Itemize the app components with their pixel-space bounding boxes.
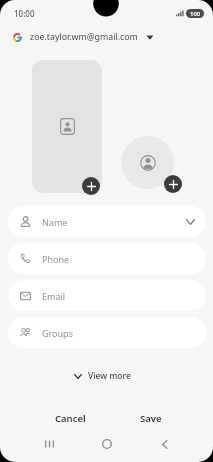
button[interactable]: View more <box>0 366 209 386</box>
button[interactable]: Groups <box>8 317 206 348</box>
button[interactable] <box>32 60 102 193</box>
staticText: 10:00 <box>14 8 35 19</box>
button[interactable] <box>36 434 62 454</box>
button[interactable]: Name <box>8 206 206 237</box>
button[interactable]: Save <box>119 404 183 432</box>
button[interactable]: Phone <box>8 243 206 274</box>
button[interactable]: Cancel <box>38 404 102 432</box>
staticText: Save <box>140 412 162 425</box>
staticText: Email <box>42 290 66 302</box>
staticText: 100 <box>190 10 201 18</box>
staticText: Groups <box>42 327 73 339</box>
staticText: Cancel <box>55 412 86 425</box>
button[interactable] <box>121 136 174 189</box>
button[interactable]: Email <box>8 280 206 311</box>
button[interactable] <box>82 177 100 195</box>
staticText: View more <box>88 370 131 382</box>
staticText: Phone <box>42 253 70 265</box>
staticText: zoe.taylor.wm@gmail.com <box>30 31 138 43</box>
button[interactable] <box>94 434 120 454</box>
button[interactable] <box>152 434 178 454</box>
button[interactable] <box>164 175 182 193</box>
staticText: Name <box>42 216 68 228</box>
button[interactable]: zoe.taylor.wm@gmail.com <box>12 30 155 44</box>
